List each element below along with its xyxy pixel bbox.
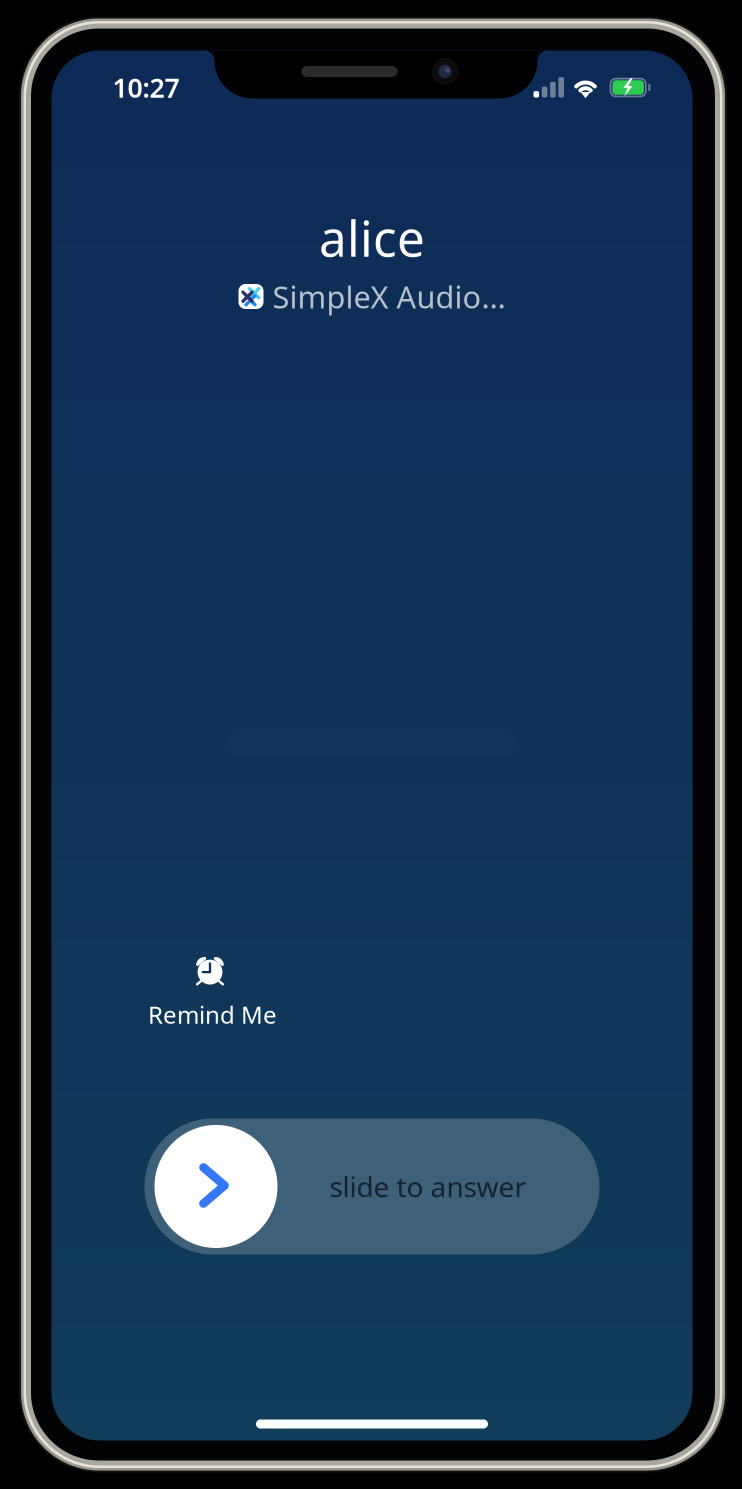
button[interactable]: Remind Me [137, 959, 287, 1029]
staticText: 10:27 [112, 70, 179, 105]
staticText: SimpleX Audio… [272, 276, 505, 317]
staticText: alice [319, 205, 425, 270]
staticText: Remind Me [148, 999, 277, 1030]
staticText: slide to answer [329, 1168, 526, 1205]
button[interactable]: slide to answer [144, 1118, 599, 1254]
